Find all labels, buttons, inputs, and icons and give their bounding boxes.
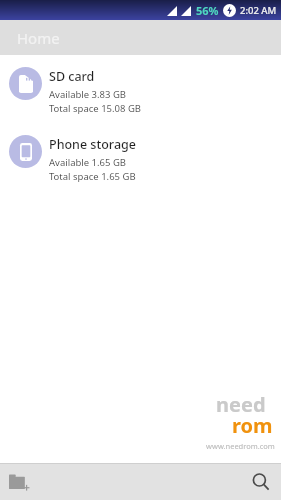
staticText: www.needrom.com bbox=[206, 441, 275, 451]
staticText: 2:02 AM bbox=[240, 4, 277, 17]
button[interactable]: SD card bbox=[0, 61, 281, 121]
button[interactable]: New folder bbox=[0, 464, 40, 500]
staticText: SD card bbox=[49, 68, 95, 85]
button[interactable]: Search bbox=[241, 464, 281, 500]
staticText: Phone storage bbox=[49, 136, 136, 153]
staticText: Home bbox=[17, 28, 60, 48]
button[interactable]: Phone storage bbox=[0, 129, 281, 189]
staticText: Available 1.65 GB bbox=[49, 156, 126, 169]
staticText: 56% bbox=[196, 3, 219, 18]
staticText: rom bbox=[232, 412, 273, 439]
staticText: Total space 1.65 GB bbox=[49, 170, 136, 183]
staticText: Total space 15.08 GB bbox=[49, 102, 141, 115]
staticText: need bbox=[216, 391, 266, 418]
staticText: Available 3.83 GB bbox=[49, 88, 126, 101]
